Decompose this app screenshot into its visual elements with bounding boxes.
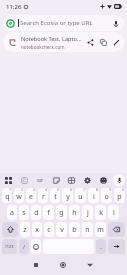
button[interactable]: Enter bbox=[108, 239, 125, 254]
staticText: b bbox=[72, 225, 77, 235]
button[interactable]: GIF bbox=[34, 174, 46, 186]
staticText: GIF bbox=[37, 178, 43, 183]
staticText: i bbox=[93, 192, 95, 202]
button[interactable]: Emoji bbox=[31, 239, 41, 254]
staticText: f bbox=[47, 208, 50, 218]
button[interactable]: w bbox=[14, 188, 24, 203]
button[interactable]: b bbox=[69, 222, 80, 237]
button[interactable]: h bbox=[69, 205, 80, 220]
staticText: 8 bbox=[96, 188, 99, 192]
button[interactable]: / bbox=[19, 239, 29, 254]
staticText: . bbox=[100, 242, 102, 252]
staticText: Notebook Test, Lapto... bbox=[21, 35, 82, 43]
button[interactable]: Clipboard bbox=[18, 174, 30, 186]
staticText: o bbox=[104, 192, 109, 202]
button[interactable]: p bbox=[114, 188, 125, 203]
button[interactable]: Recents bbox=[29, 258, 43, 272]
staticText: v bbox=[60, 225, 64, 235]
staticText: c bbox=[47, 225, 51, 235]
button[interactable]: m bbox=[95, 222, 106, 237]
button[interactable]: s bbox=[19, 205, 29, 220]
button[interactable]: Share bbox=[84, 36, 97, 49]
staticText: h bbox=[72, 208, 77, 218]
staticText: j bbox=[87, 208, 89, 218]
staticText: q bbox=[5, 192, 10, 202]
staticText: 11:26 bbox=[6, 3, 22, 11]
button[interactable]: j bbox=[82, 205, 93, 220]
staticText: s bbox=[22, 208, 26, 218]
button[interactable]: a bbox=[7, 205, 17, 220]
button[interactable]: Home bbox=[56, 258, 70, 272]
button[interactable]: t bbox=[50, 188, 60, 203]
button[interactable]: f bbox=[43, 205, 54, 220]
staticText: 7 bbox=[83, 188, 86, 192]
staticText: m bbox=[97, 225, 104, 235]
staticText: n bbox=[85, 225, 90, 235]
staticText: 0 bbox=[122, 188, 125, 192]
button[interactable]: z bbox=[20, 222, 30, 237]
staticText: 3 bbox=[33, 188, 36, 192]
button[interactable]: Voice input bbox=[113, 174, 125, 186]
button[interactable]: Shift bbox=[2, 222, 18, 237]
button[interactable]: Apps bbox=[2, 174, 14, 186]
button[interactable]: e bbox=[26, 188, 36, 203]
staticText: e bbox=[29, 192, 33, 202]
staticText: l bbox=[113, 208, 115, 218]
button[interactable]: c bbox=[44, 222, 54, 237]
staticText: p bbox=[117, 192, 122, 202]
staticText: y bbox=[66, 192, 70, 202]
staticText: a bbox=[10, 208, 14, 218]
button[interactable]: n bbox=[82, 222, 93, 237]
staticText: x bbox=[35, 225, 39, 235]
staticText: 6 bbox=[70, 188, 73, 192]
button[interactable]: Backspace bbox=[108, 222, 125, 237]
button[interactable]: . bbox=[96, 239, 106, 254]
staticText: 4 bbox=[45, 188, 48, 192]
button[interactable]: Notebook Test, Lapto... bbox=[3, 32, 124, 52]
button[interactable]: l bbox=[108, 205, 119, 220]
button[interactable]: y bbox=[62, 188, 73, 203]
staticText: k bbox=[99, 208, 103, 218]
staticText: ?123 bbox=[5, 244, 14, 249]
button[interactable]: q bbox=[2, 188, 12, 203]
button[interactable]: Copy bbox=[97, 36, 110, 49]
button[interactable]: x bbox=[32, 222, 42, 237]
staticText: 5 bbox=[57, 188, 60, 192]
button[interactable]: Edit bbox=[110, 36, 123, 49]
staticText: r bbox=[42, 192, 45, 202]
staticText: 1 bbox=[9, 188, 12, 192]
button[interactable]: k bbox=[95, 205, 106, 220]
button[interactable]: Voice search bbox=[108, 16, 123, 31]
button[interactable]: r bbox=[38, 188, 48, 203]
button[interactable]: Stickers bbox=[50, 174, 62, 186]
button[interactable]: v bbox=[56, 222, 67, 237]
staticText: t bbox=[54, 192, 57, 202]
button[interactable]: Search Ecosia or type URL bbox=[3, 15, 124, 31]
staticText: 2 bbox=[21, 188, 24, 192]
staticText: 9 bbox=[109, 188, 112, 192]
button[interactable]: i bbox=[88, 188, 99, 203]
staticText: w bbox=[16, 192, 22, 202]
button[interactable]: Back bbox=[83, 258, 97, 272]
staticText: g bbox=[59, 208, 64, 218]
button[interactable]: o bbox=[101, 188, 112, 203]
staticText: u bbox=[78, 192, 83, 202]
staticText: d bbox=[34, 208, 39, 218]
button[interactable]: d bbox=[31, 205, 41, 220]
button[interactable]: ?123 bbox=[2, 239, 17, 254]
button[interactable]: Emoji bbox=[97, 174, 109, 186]
button[interactable]: u bbox=[75, 188, 86, 203]
staticText: notebookcheck.com bbox=[21, 44, 65, 50]
button[interactable]: g bbox=[56, 205, 67, 220]
staticText: / bbox=[23, 243, 26, 250]
staticText: z bbox=[23, 225, 27, 235]
button[interactable]: Translate bbox=[65, 174, 77, 186]
button[interactable]: Settings bbox=[81, 174, 93, 186]
staticText: Search Ecosia or type URL bbox=[20, 19, 108, 27]
